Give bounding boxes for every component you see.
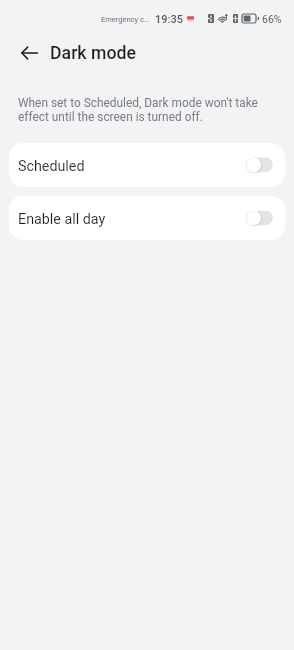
staticText: 19:35 [155, 13, 183, 26]
staticText: When set to Scheduled, Dark mode won't t… [18, 96, 258, 124]
staticText: Scheduled [18, 158, 85, 175]
staticText: 66% [262, 13, 282, 25]
staticText: Enable all day [18, 211, 106, 228]
button[interactable]: Scheduled, off [246, 157, 273, 173]
button[interactable]: Enable all day, off [246, 210, 273, 226]
staticText: Dark mode [50, 43, 136, 64]
button[interactable]: Enable all day [9, 196, 285, 240]
button[interactable]: Scheduled [9, 143, 285, 187]
staticText: Emergency c... [101, 15, 150, 24]
button[interactable]: Back [12, 36, 46, 70]
